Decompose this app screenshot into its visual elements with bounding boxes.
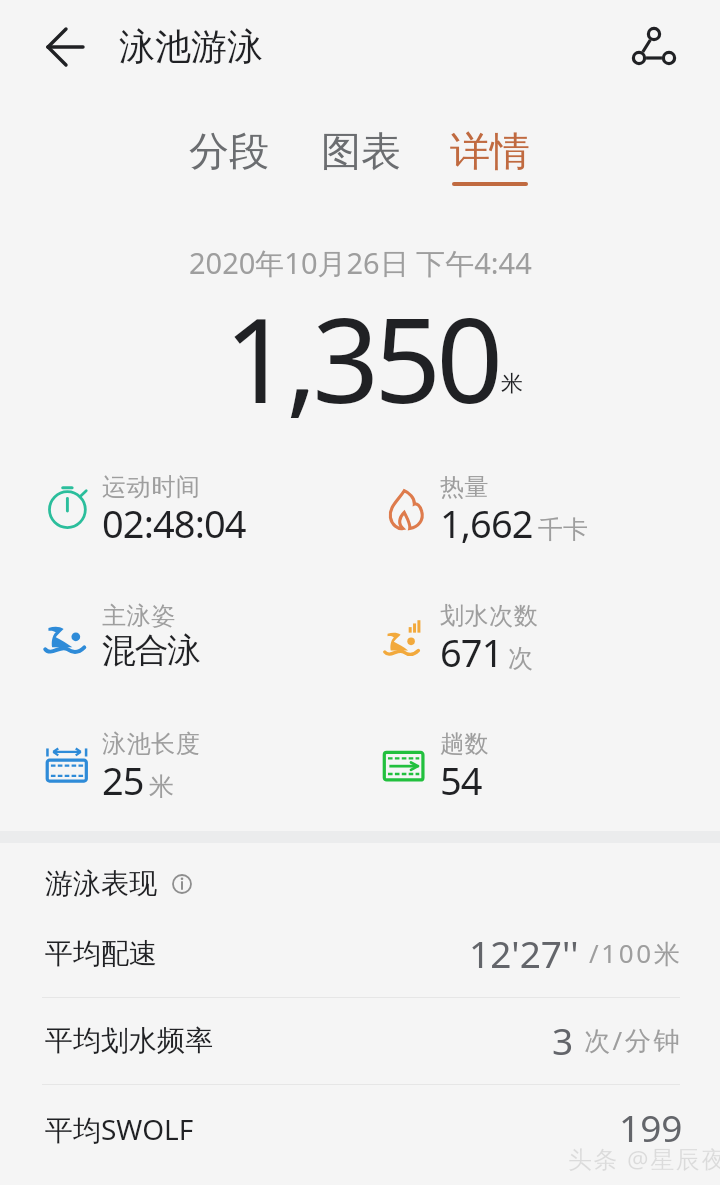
button[interactable]: Share [618,10,690,82]
button[interactable]: 平均划水频率 [0,999,720,1086]
staticText: 图表 [321,126,401,176]
staticText: 泳池游泳 [119,24,263,69]
button[interactable]: 平均SWOLF [0,1086,720,1173]
staticText: 12'27'' [469,928,579,978]
staticText: 次 [508,643,533,674]
staticText: 3 [552,1015,574,1065]
staticText: 54 [440,754,482,806]
button[interactable]: Back [30,11,102,83]
staticText: /100米 [589,935,683,971]
staticText: 平均SWOLF [45,1110,194,1148]
staticText: 02:48:04 [102,497,246,549]
staticText: 主泳姿 [102,601,176,631]
staticText: 详情 [450,126,530,176]
staticText: 趟数 [440,729,490,759]
button[interactable]: 平均配速 [0,912,720,999]
button[interactable]: 图表 [307,112,415,190]
staticText: 次/分钟 [584,1022,683,1058]
staticText: 25 [102,754,144,806]
staticText: 热量 [440,472,490,502]
button[interactable]: 详情 [436,112,544,200]
staticText: 平均配速 [45,936,157,971]
staticText: 千卡 [538,514,588,545]
staticText: 1,662 [440,497,533,549]
staticText: 1,350 [224,278,499,437]
staticText: 游泳表现 [45,866,157,901]
staticText: 平均划水频率 [45,1023,213,1058]
staticText: 2020年10月26日 下午4:44 [189,243,532,283]
button[interactable]: 分段 [175,112,283,190]
staticText: 混合泳 [102,629,200,672]
staticText: 泳池长度 [102,729,201,759]
staticText: 头条 @星辰夜风 [568,1142,720,1175]
staticText: 分段 [189,126,269,176]
staticText: 米 [149,771,174,802]
staticText: 199 [619,1102,683,1152]
staticText: 运动时间 [102,472,201,502]
staticText: 671 [440,626,503,678]
staticText: 划水次数 [440,601,539,631]
staticText: 米 [501,370,523,398]
button[interactable]: Info [169,871,195,897]
